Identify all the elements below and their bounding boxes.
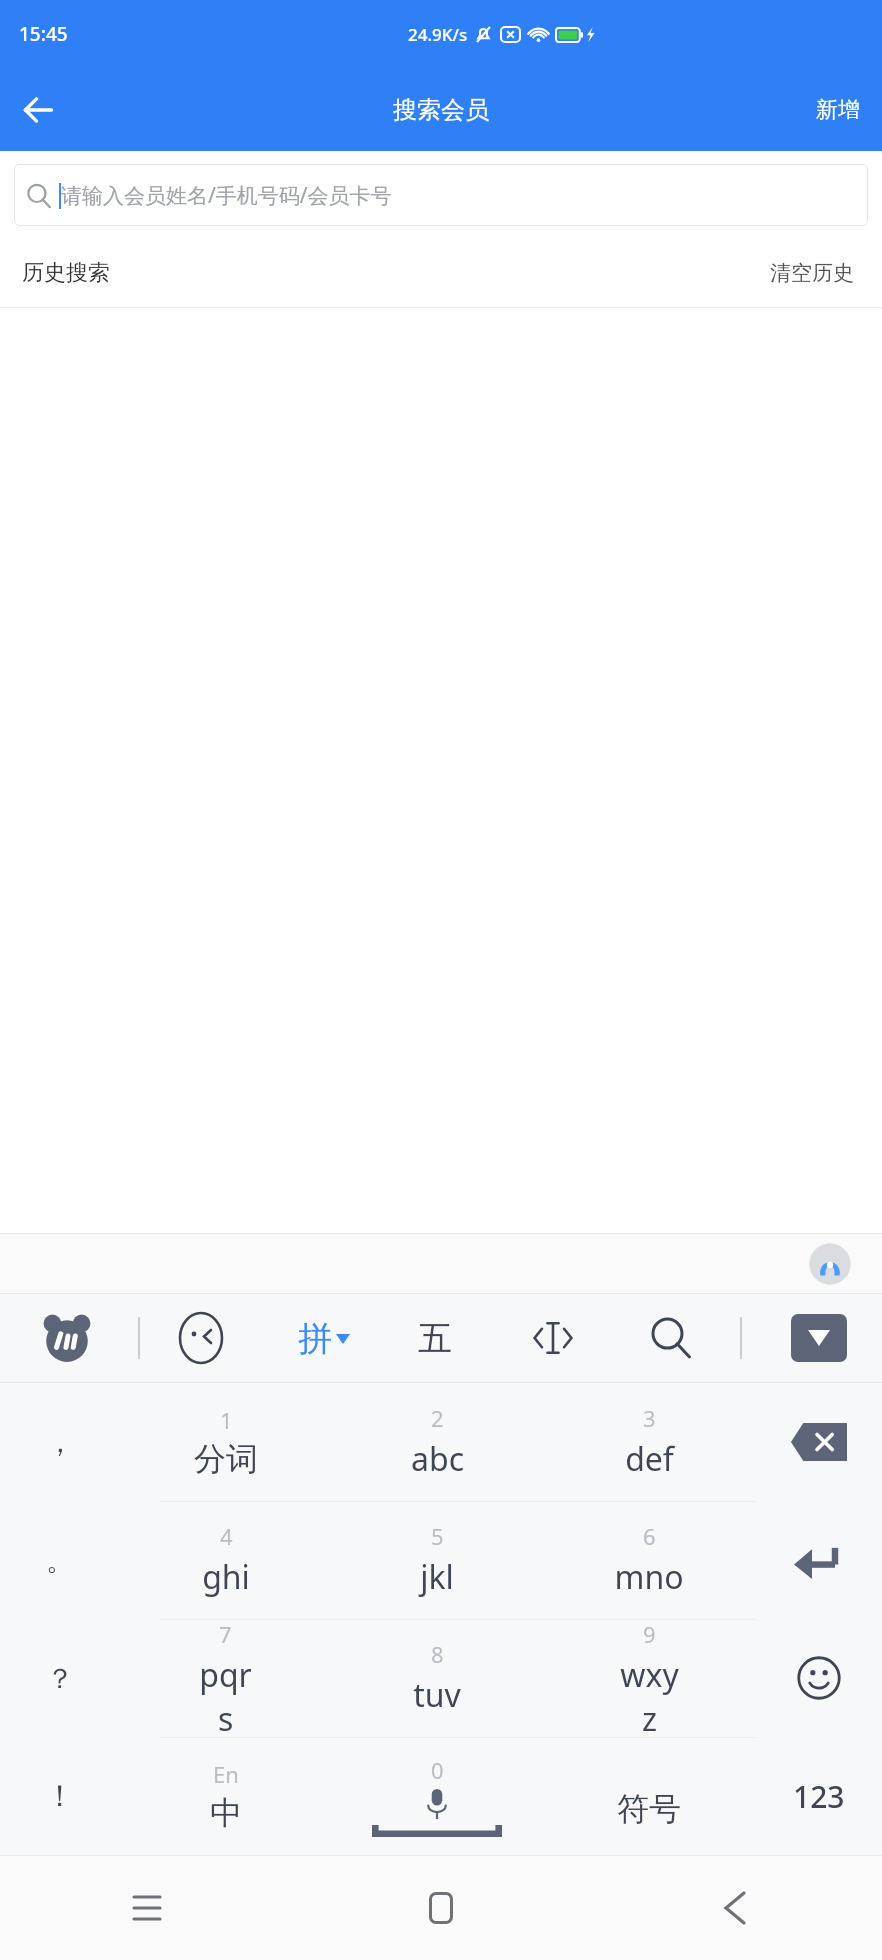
staticText: jkl [420,1555,454,1599]
staticText: def [625,1437,674,1481]
button[interactable]: Input assistant [806,1240,854,1288]
button[interactable]: Hide keyboard [788,1307,850,1369]
button[interactable]: 4 [120,1501,331,1619]
button[interactable]: Recents [0,1856,294,1960]
button[interactable]: ？ [0,1619,120,1737]
button[interactable]: 拼 [292,1311,356,1366]
staticText: 7 [219,1619,232,1649]
staticText: 历史搜索 [22,259,110,287]
button[interactable]: 6 [543,1501,755,1619]
staticText: 搜索会员 [393,95,489,125]
staticText: 。 [46,1543,74,1578]
staticText: ghi [202,1555,250,1599]
staticText: 24.9K/s [408,23,468,46]
staticText: tuv [413,1673,461,1717]
button[interactable]: 3 [543,1383,755,1501]
button[interactable]: Delete [755,1383,882,1501]
button[interactable]: 。 [0,1501,120,1619]
button[interactable]: 新增 [794,84,882,136]
button[interactable]: 5 [331,1501,543,1619]
staticText: 3 [643,1403,656,1433]
staticText: 9 [643,1619,656,1649]
button[interactable]: Back [8,80,68,140]
button[interactable]: 0 [331,1737,543,1855]
staticText: mno [614,1555,684,1599]
staticText: 4 [220,1521,233,1551]
staticText: 6 [643,1521,656,1551]
button[interactable]: Search [638,1305,704,1371]
staticText: z [642,1697,658,1737]
staticText: En [213,1759,239,1789]
button[interactable]: Baidu input [38,1309,96,1367]
button[interactable]: 8 [331,1619,543,1737]
button[interactable]: 7 [120,1619,331,1737]
button[interactable]: Numbers [755,1737,882,1855]
staticText: ， [46,1425,74,1460]
staticText: 拼 [298,1317,332,1360]
staticText: 5 [431,1521,444,1551]
staticText: s [218,1697,234,1737]
button[interactable]: Cursor move [520,1305,586,1371]
staticText: 分词 [194,1439,258,1479]
staticText: 请输入会员姓名/手机号码/会员卡号 [61,181,392,210]
staticText: 15:45 [19,21,68,47]
staticText: 8 [431,1639,444,1669]
staticText: abc [411,1437,464,1481]
button[interactable]: 请输入会员姓名/手机号码/会员卡号 [14,164,868,226]
staticText: 1 [220,1405,233,1435]
staticText: 123 [793,1776,845,1817]
button[interactable]: 9 [543,1619,755,1737]
button[interactable]: Back [588,1856,882,1960]
staticText: 清空历史 [770,260,854,286]
button[interactable]: En [120,1737,331,1855]
button[interactable]: Enter [755,1501,882,1619]
button[interactable]: ！ [0,1737,120,1855]
button[interactable]: Emoticon [168,1305,234,1371]
button[interactable]: Emoji [755,1619,882,1737]
staticText: wxy [620,1653,679,1697]
staticText: 符号 [617,1789,681,1829]
button[interactable]: 2 [331,1383,543,1501]
staticText: 0 [431,1755,444,1785]
staticText: 新增 [816,96,860,124]
button[interactable]: 清空历史 [764,254,860,292]
button[interactable]: ， [0,1383,120,1501]
button[interactable]: 符号 [543,1737,755,1855]
button[interactable]: 1 [120,1383,331,1501]
staticText: 2 [431,1403,444,1433]
staticText: 五 [418,1317,452,1360]
staticText: pqr [199,1653,252,1697]
staticText: ？ [46,1661,74,1696]
button[interactable]: Home [294,1856,588,1960]
button[interactable]: 五 [410,1309,460,1368]
staticText: ！ [45,1777,75,1815]
staticText: 中 [210,1793,242,1833]
